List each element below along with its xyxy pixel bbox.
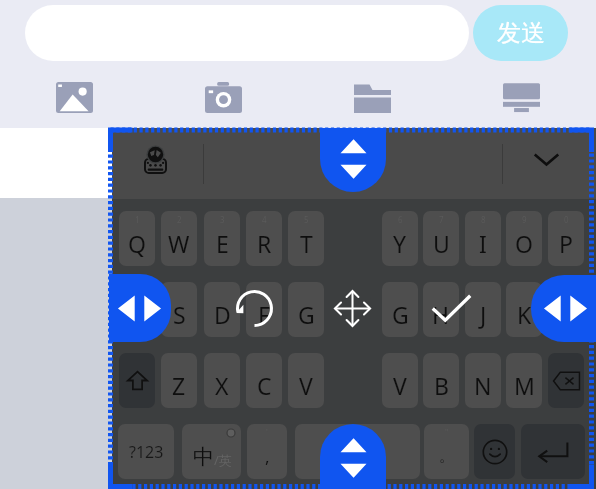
staticText: S (173, 299, 186, 330)
button[interactable]: Hide keyboard (528, 144, 564, 174)
staticText: 8 (481, 214, 486, 225)
button[interactable]: M (506, 353, 542, 408)
staticText: E (216, 228, 229, 259)
button[interactable]: ' (247, 424, 287, 479)
staticText: C (257, 370, 272, 401)
button[interactable]: Enter (521, 424, 585, 479)
button[interactable]: 1 (119, 211, 155, 266)
button[interactable]: F (246, 282, 282, 337)
button[interactable]: H (423, 282, 459, 337)
staticText: Q (128, 228, 146, 259)
button[interactable]: 0 (548, 211, 584, 266)
staticText: X (215, 370, 229, 401)
button[interactable]: X (204, 353, 240, 408)
button[interactable]: B (423, 353, 459, 408)
button[interactable]: 9 (506, 211, 542, 266)
staticText: /英 (214, 451, 232, 469)
staticText: G (392, 299, 409, 330)
staticText: 发送 (497, 18, 545, 48)
button[interactable]: Message input (25, 5, 469, 61)
button[interactable]: S (161, 282, 197, 337)
button[interactable]: Reset size (236, 290, 273, 327)
button[interactable]: Camera (149, 68, 298, 126)
button[interactable]: 2 (161, 211, 197, 266)
button[interactable]: Move keyboard (334, 290, 371, 327)
staticText: 2 (177, 214, 182, 225)
staticText: J (480, 299, 487, 330)
button[interactable]: J (465, 282, 501, 337)
button[interactable]: Resize width from right (531, 275, 596, 342)
staticText: R (257, 228, 272, 259)
button[interactable]: 5 (288, 211, 324, 266)
button[interactable]: 6 (382, 211, 418, 266)
button[interactable]: Gallery (0, 68, 149, 126)
staticText: Y (393, 228, 407, 259)
staticText: W (168, 228, 190, 259)
button[interactable]: 8 (465, 211, 501, 266)
staticText: , (265, 445, 270, 468)
staticText: 9 (522, 214, 527, 225)
button[interactable]: V (382, 353, 418, 408)
staticText: ?123 (129, 441, 164, 463)
button[interactable]: Resize height from bottom (320, 424, 386, 489)
staticText: I (479, 228, 487, 259)
button[interactable]: ?123 (118, 424, 174, 479)
button[interactable]: L (548, 282, 584, 337)
button[interactable]: 发送 (473, 5, 568, 61)
staticText: F (258, 299, 270, 330)
staticText: P (559, 228, 573, 259)
staticText: U (433, 228, 450, 259)
button[interactable]: D (204, 282, 240, 337)
button[interactable]: K (506, 282, 542, 337)
button[interactable]: 4 (246, 211, 282, 266)
button[interactable]: Space (295, 424, 420, 479)
button[interactable]: Backspace (548, 353, 584, 408)
button[interactable]: 中 (182, 424, 241, 479)
button[interactable]: Confirm (432, 295, 471, 321)
staticText: T (300, 228, 313, 259)
button[interactable]: Resize width from left (109, 274, 171, 342)
staticText: G (298, 299, 315, 330)
staticText: 。 (439, 447, 454, 466)
button[interactable]: Shift (119, 353, 155, 408)
staticText: O (515, 228, 533, 259)
staticText: L (560, 299, 573, 330)
button[interactable]: G (288, 282, 324, 337)
button[interactable]: Emoji (474, 424, 515, 479)
staticText: H (432, 299, 450, 330)
button[interactable]: G (382, 282, 418, 337)
button[interactable]: Resize height from top (320, 128, 386, 192)
button[interactable]: 3 (204, 211, 240, 266)
button[interactable]: Files (298, 68, 447, 126)
button[interactable]: A (119, 282, 155, 337)
staticText: V (393, 370, 407, 401)
staticText: 中 (193, 444, 214, 470)
button[interactable]: 7 (423, 211, 459, 266)
button[interactable]: V (288, 353, 324, 408)
staticText: D (214, 299, 231, 330)
staticText: M (514, 370, 535, 401)
staticText: A (130, 299, 145, 330)
staticText: B (434, 370, 449, 401)
staticText: Z (172, 370, 186, 401)
staticText: N (474, 370, 492, 401)
staticText: 3 (220, 214, 225, 225)
button[interactable]: N (465, 353, 501, 408)
button[interactable]: Screen share (447, 68, 596, 126)
staticText: K (517, 299, 532, 330)
button[interactable]: Z (161, 353, 197, 408)
staticText: V (299, 370, 313, 401)
button[interactable]: Switch input language (144, 147, 167, 174)
button[interactable]: C (246, 353, 282, 408)
